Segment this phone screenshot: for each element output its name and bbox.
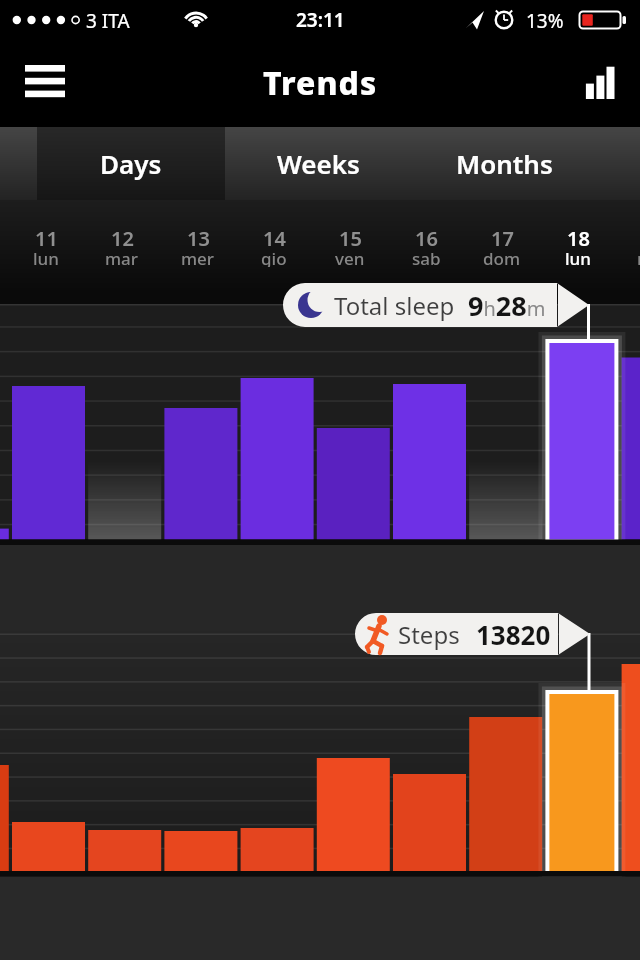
staticText: lun [565,247,591,267]
staticText: Trends [263,61,378,105]
staticText: sab [412,247,441,267]
staticText: 11 [35,225,58,249]
staticText: mar [105,247,139,267]
button[interactable]: Months [411,127,597,200]
staticText: Total sleep [334,289,455,322]
staticText: 3 ITA [86,8,130,32]
staticText: 18 [567,225,590,249]
button[interactable]: Weeks [225,127,411,200]
button[interactable] [466,205,538,285]
button[interactable] [283,283,589,327]
button[interactable] [10,205,82,285]
button[interactable]: Days [37,127,225,200]
button[interactable] [542,205,614,285]
staticText: mar [637,247,640,267]
staticText: 14 [263,225,286,249]
staticText: 13 [187,225,210,249]
staticText: 17 [491,225,514,249]
button[interactable] [162,205,234,285]
staticText: 13820 [476,617,551,652]
staticText: Days [100,146,162,181]
button[interactable] [390,205,462,285]
staticText: dom [483,247,521,267]
staticText: ven [335,247,365,267]
staticText: 13% [526,8,564,32]
staticText: Steps [398,618,460,651]
button[interactable] [574,54,626,110]
button[interactable] [13,53,77,113]
staticText: mer [181,247,215,267]
button[interactable] [355,613,590,655]
staticText: Months [456,146,553,181]
button[interactable] [238,205,310,285]
staticText: Weeks [277,146,360,181]
button[interactable] [86,205,158,285]
staticText: lun [33,247,59,267]
staticText: 15 [339,225,362,249]
button[interactable] [314,205,386,285]
staticText: 9h28m [468,287,546,324]
staticText: gio [261,247,287,267]
staticText: 23:11 [296,7,345,33]
staticText: 16 [415,225,438,249]
button[interactable] [618,205,640,285]
staticText: 12 [111,225,134,249]
